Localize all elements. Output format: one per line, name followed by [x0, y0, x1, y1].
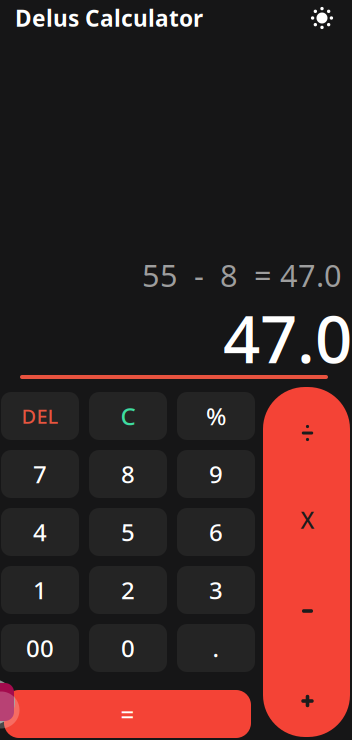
button[interactable]: Delus Calculator	[15, 3, 255, 33]
staticText: 0	[121, 632, 135, 664]
button[interactable]: Toggle brightness	[307, 3, 337, 33]
button[interactable]: C	[89, 392, 167, 440]
button[interactable]: 5	[89, 508, 167, 556]
staticText: 5	[121, 516, 135, 548]
staticText: 00	[26, 632, 54, 664]
staticText: 4	[33, 516, 47, 548]
staticText: 7	[33, 458, 47, 490]
button[interactable]: Minus	[264, 581, 351, 641]
staticText: DEL	[21, 403, 58, 429]
button[interactable]: 7	[1, 450, 79, 498]
button[interactable]: %	[177, 392, 255, 440]
staticText: 1	[33, 574, 47, 606]
button[interactable]: .	[177, 624, 255, 672]
button[interactable]: X	[264, 490, 351, 550]
button[interactable]: DEL	[1, 392, 79, 440]
button[interactable]: 6	[177, 508, 255, 556]
button[interactable]: 2	[89, 566, 167, 614]
button[interactable]: Plus	[264, 671, 351, 731]
staticText: .	[212, 632, 219, 664]
staticText: 8	[121, 458, 135, 490]
staticText: 2	[121, 574, 135, 606]
button[interactable]: 3	[177, 566, 255, 614]
button[interactable]: 9	[177, 450, 255, 498]
staticText: 6	[209, 516, 223, 548]
button[interactable]: =	[4, 690, 251, 738]
staticText: 9	[209, 458, 223, 490]
staticText: 55 - 8 = 47.0	[142, 255, 342, 295]
staticText: X	[300, 505, 314, 535]
staticText: 47.0	[223, 295, 352, 381]
staticText: C	[120, 400, 135, 432]
button[interactable]: 4	[1, 508, 79, 556]
button[interactable]: Divide	[264, 403, 351, 463]
button[interactable]: 8	[89, 450, 167, 498]
staticText: 3	[209, 574, 223, 606]
staticText: %	[206, 400, 226, 432]
staticText: =	[120, 698, 134, 730]
button[interactable]: 0	[89, 624, 167, 672]
staticText: Delus Calculator	[15, 3, 203, 33]
button[interactable]: 00	[1, 624, 79, 672]
button[interactable]: 1	[1, 566, 79, 614]
